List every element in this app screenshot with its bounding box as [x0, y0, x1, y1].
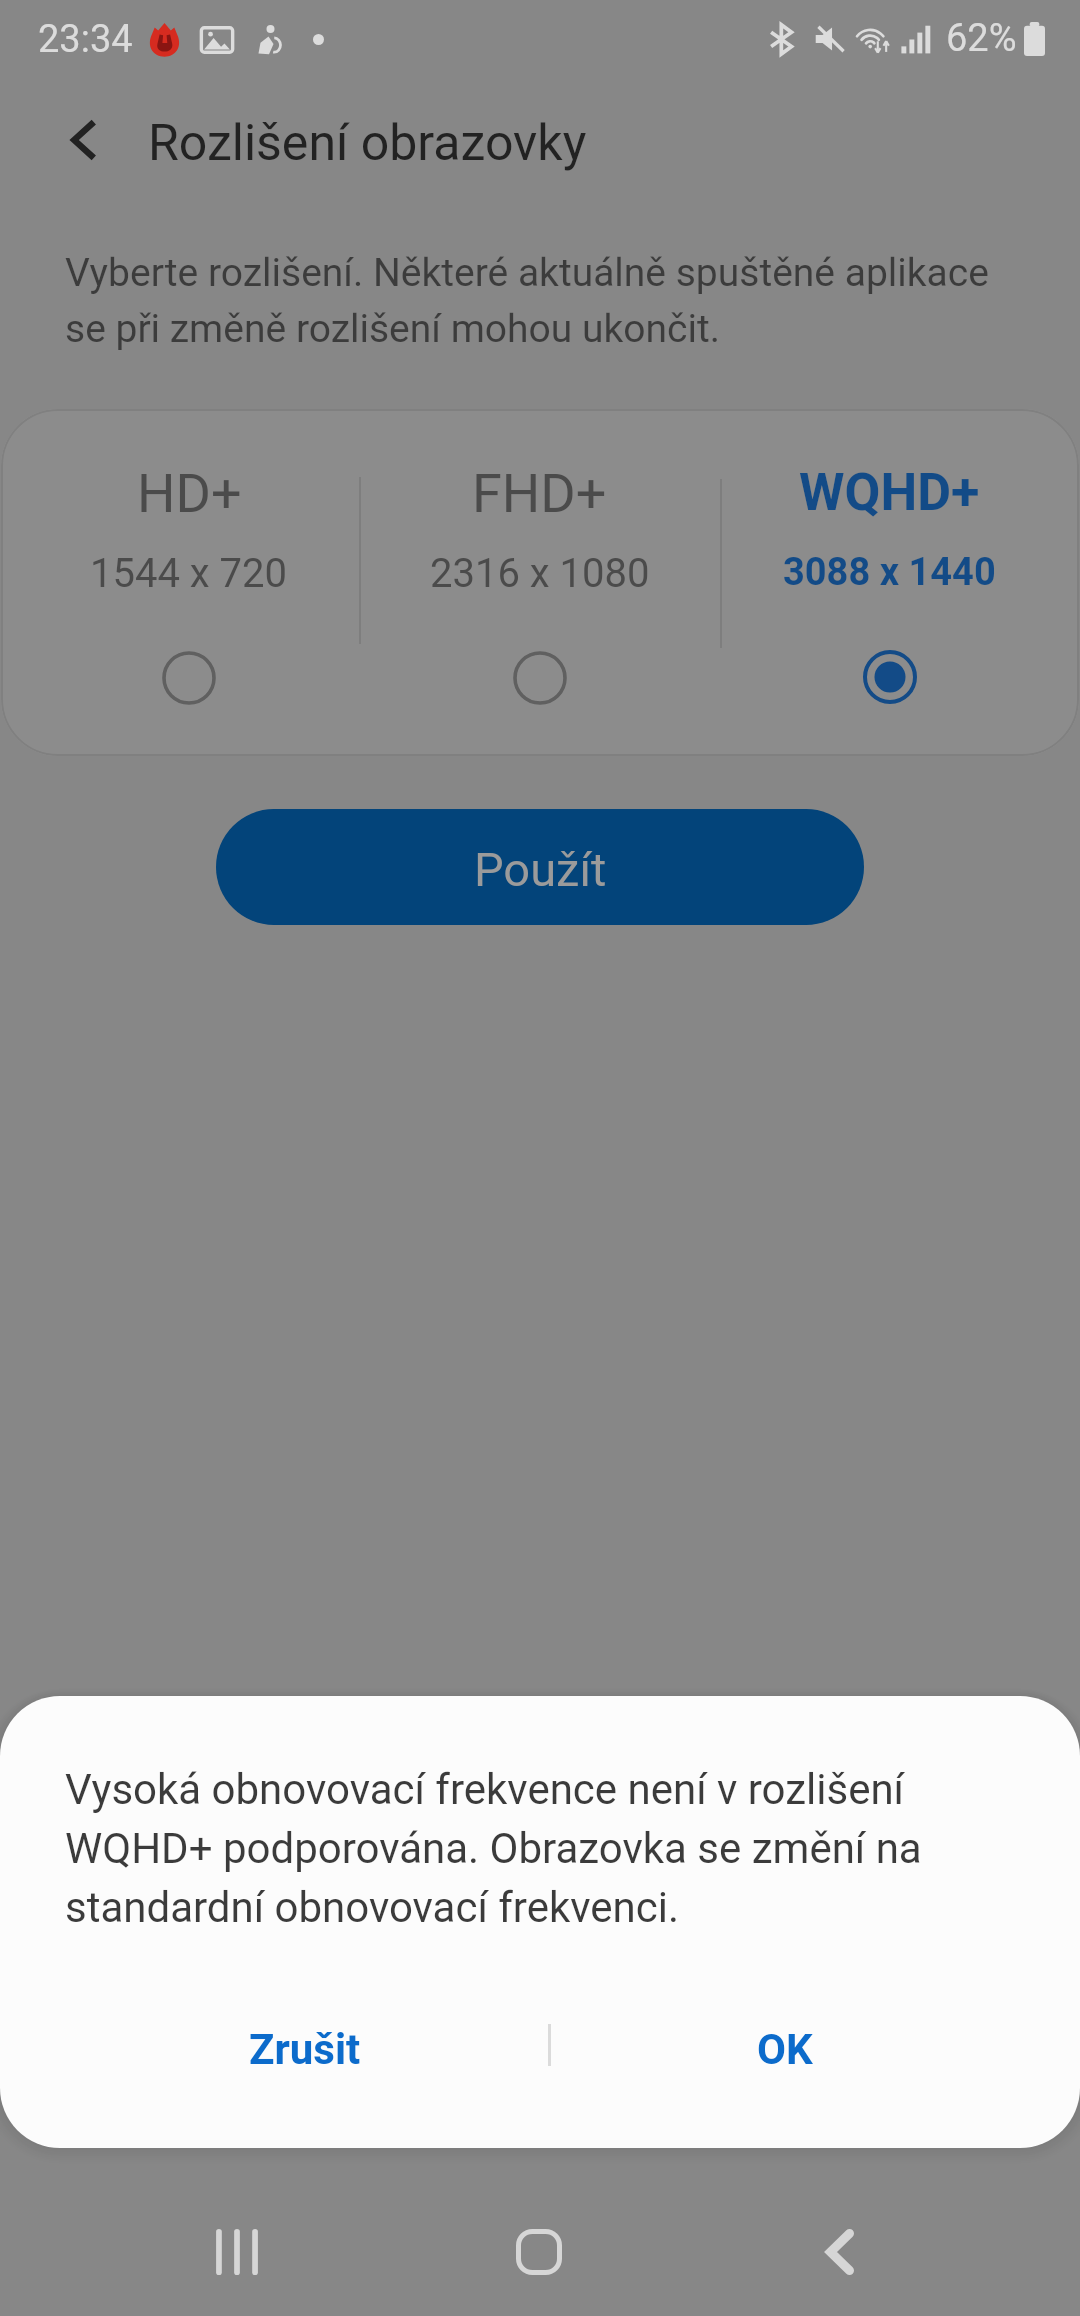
button[interactable]: OK [545, 1989, 1025, 2109]
staticText: Rozlišení obrazovky [148, 114, 587, 173]
button[interactable]: Zrušit [55, 1989, 555, 2109]
button[interactable]: HD+ [10, 409, 368, 756]
staticText: Použít [474, 842, 607, 897]
staticText: OK [757, 2025, 813, 2074]
staticText: Vyberte rozlišení. Některé aktuálně spuš… [65, 250, 989, 351]
button[interactable]: Home [461, 2188, 617, 2316]
staticText: Zrušit [249, 2025, 361, 2074]
staticText: 1544 x 720 [90, 550, 288, 597]
button[interactable]: Back [762, 2188, 918, 2316]
staticText: Vysoká obnovovací frekvence není v rozli… [65, 1765, 922, 1932]
staticText: 62% [946, 16, 1017, 61]
staticText: WQHD+ [799, 462, 980, 523]
button[interactable]: Recent apps [159, 2188, 315, 2316]
staticText: 2316 x 1080 [430, 550, 650, 597]
button[interactable]: FHD+ [359, 409, 720, 756]
staticText: FHD+ [472, 462, 607, 525]
button[interactable]: Použít [216, 809, 864, 925]
button[interactable]: WQHD+ [710, 409, 1069, 756]
staticText: 23:34 [38, 17, 133, 62]
staticText: HD+ [137, 462, 242, 525]
button[interactable]: Back [54, 110, 114, 170]
staticText: 3088 x 1440 [783, 550, 996, 595]
